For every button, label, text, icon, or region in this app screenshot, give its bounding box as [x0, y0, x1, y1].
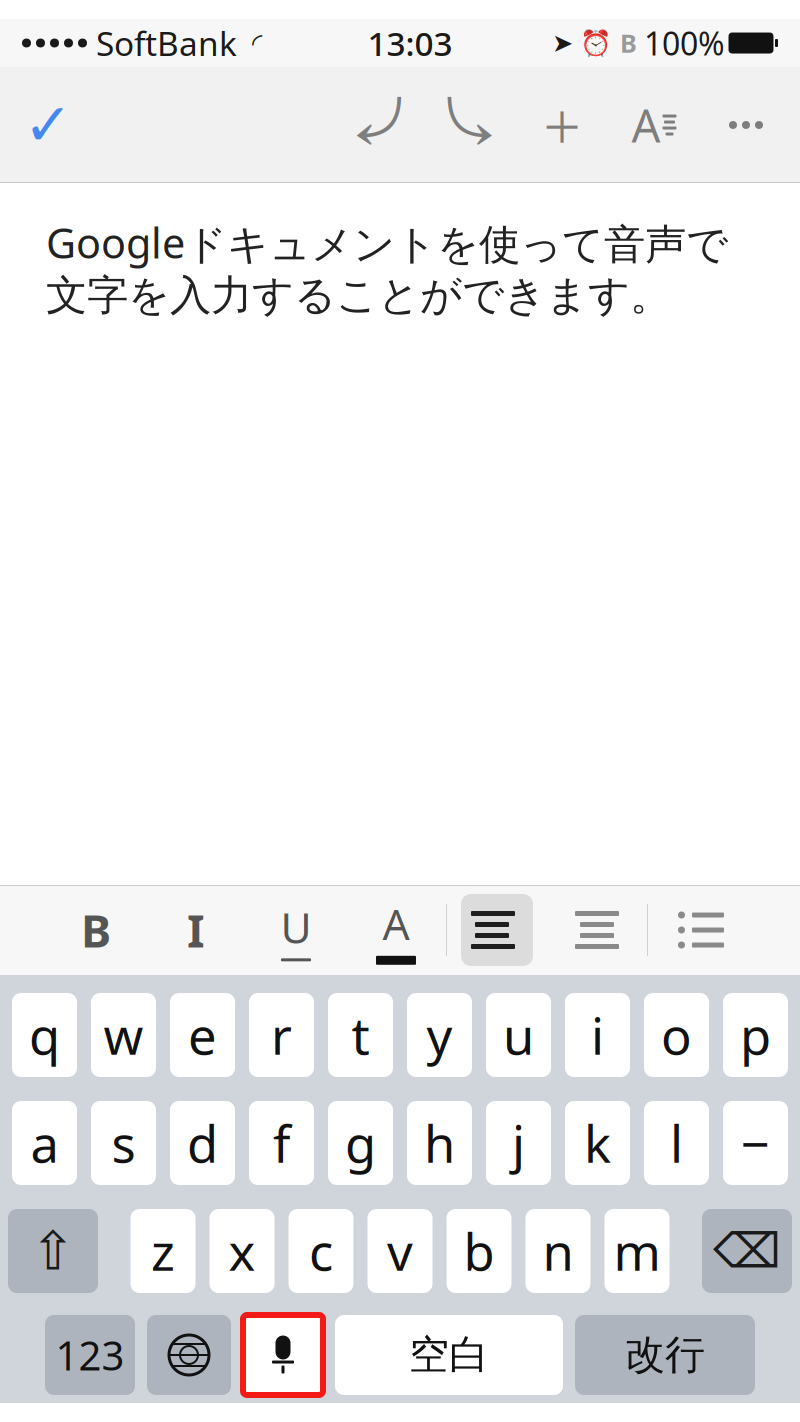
- button[interactable]: h: [407, 1101, 472, 1185]
- staticText: Googleドキュメントを使って音声で文字を入力することができます。: [46, 215, 728, 321]
- staticText: y: [426, 1001, 452, 1069]
- button[interactable]: Italic: [146, 887, 246, 973]
- staticText: o: [661, 1001, 692, 1069]
- staticText: l: [670, 1109, 683, 1177]
- button[interactable]: Text color: [346, 887, 446, 973]
- button[interactable]: −: [723, 1101, 788, 1185]
- button[interactable]: Return: [575, 1315, 755, 1395]
- staticText: I: [187, 900, 205, 960]
- staticText: ⤶: [351, 99, 404, 151]
- staticText: e: [188, 1001, 217, 1069]
- button[interactable]: w: [91, 993, 156, 1077]
- staticText: f: [273, 1109, 290, 1177]
- staticText: ➤: [552, 29, 573, 57]
- staticText: j: [512, 1109, 525, 1177]
- button[interactable]: g: [328, 1101, 393, 1185]
- button[interactable]: Insert: [516, 79, 608, 171]
- button[interactable]: j: [486, 1101, 551, 1185]
- button[interactable]: Done: [8, 79, 88, 171]
- staticText: v: [387, 1217, 413, 1285]
- button[interactable]: p: [723, 993, 788, 1077]
- staticText: ⤷: [443, 99, 496, 151]
- button[interactable]: r: [249, 993, 314, 1077]
- staticText: s: [111, 1109, 135, 1177]
- staticText: A: [382, 895, 409, 952]
- button[interactable]: Space: [335, 1315, 563, 1395]
- button[interactable]: a: [12, 1101, 77, 1185]
- staticText: A: [631, 95, 660, 155]
- staticText: ⏰: [580, 28, 612, 57]
- button[interactable]: f: [249, 1101, 314, 1185]
- staticText: ✓: [23, 92, 72, 158]
- staticText: B: [620, 26, 637, 60]
- button[interactable]: d: [170, 1101, 235, 1185]
- staticText: 123: [55, 1328, 124, 1381]
- button[interactable]: Align left: [447, 887, 547, 973]
- button[interactable]: o: [644, 993, 709, 1077]
- button[interactable]: Redo: [424, 79, 516, 171]
- button[interactable]: Bold: [46, 887, 146, 973]
- staticText: k: [584, 1109, 611, 1177]
- staticText: c: [309, 1217, 333, 1285]
- staticText: p: [740, 1001, 771, 1069]
- staticText: SoftBank: [96, 21, 237, 65]
- staticText: B: [81, 900, 111, 960]
- button[interactable]: z: [130, 1209, 195, 1293]
- staticText: t: [351, 1001, 369, 1069]
- staticText: 100%: [644, 22, 725, 64]
- button[interactable]: Dictation: [243, 1315, 323, 1395]
- button[interactable]: u: [486, 993, 551, 1077]
- button[interactable]: i: [565, 993, 630, 1077]
- button[interactable]: y: [407, 993, 472, 1077]
- staticText: m: [613, 1217, 660, 1285]
- button[interactable]: Format: [608, 79, 700, 171]
- button[interactable]: Align center: [547, 887, 647, 973]
- staticText: 空白: [409, 1330, 489, 1379]
- staticText: b: [463, 1217, 494, 1285]
- button[interactable]: m: [604, 1209, 669, 1293]
- staticText: u: [503, 1001, 534, 1069]
- staticText: +: [543, 81, 581, 169]
- staticText: a: [30, 1109, 58, 1177]
- staticText: n: [542, 1217, 573, 1285]
- button[interactable]: Undo: [332, 79, 424, 171]
- button[interactable]: k: [565, 1101, 630, 1185]
- button[interactable]: c: [288, 1209, 353, 1293]
- staticText: ⌫: [713, 1224, 781, 1278]
- button[interactable]: Shift: [8, 1209, 98, 1293]
- button[interactable]: e: [170, 993, 235, 1077]
- staticText: 13:03: [367, 21, 452, 65]
- staticText: r: [271, 1001, 292, 1069]
- button[interactable]: Next keyboard: [147, 1315, 231, 1395]
- button[interactable]: Bulleted list: [648, 887, 754, 973]
- button[interactable]: Numbers: [45, 1315, 135, 1395]
- staticText: ⇧: [30, 1221, 75, 1281]
- button[interactable]: Underline: [246, 887, 346, 973]
- button[interactable]: Delete: [702, 1209, 792, 1293]
- staticText: ◜: [252, 28, 262, 58]
- button[interactable]: q: [12, 993, 77, 1077]
- staticText: 改行: [625, 1330, 705, 1379]
- staticText: h: [424, 1109, 455, 1177]
- staticText: z: [151, 1217, 175, 1285]
- button[interactable]: l: [644, 1101, 709, 1185]
- button[interactable]: n: [525, 1209, 590, 1293]
- staticText: x: [228, 1217, 255, 1285]
- button[interactable]: v: [367, 1209, 432, 1293]
- staticText: d: [187, 1109, 218, 1177]
- button[interactable]: t: [328, 993, 393, 1077]
- button[interactable]: b: [446, 1209, 511, 1293]
- staticText: g: [345, 1109, 376, 1177]
- staticText: i: [591, 1001, 604, 1069]
- button[interactable]: More options: [700, 79, 792, 171]
- staticText: −: [741, 1109, 770, 1177]
- staticText: q: [29, 1001, 60, 1069]
- button[interactable]: x: [209, 1209, 274, 1293]
- staticText: U: [280, 899, 311, 955]
- button[interactable]: s: [91, 1101, 156, 1185]
- staticText: w: [103, 1001, 143, 1069]
